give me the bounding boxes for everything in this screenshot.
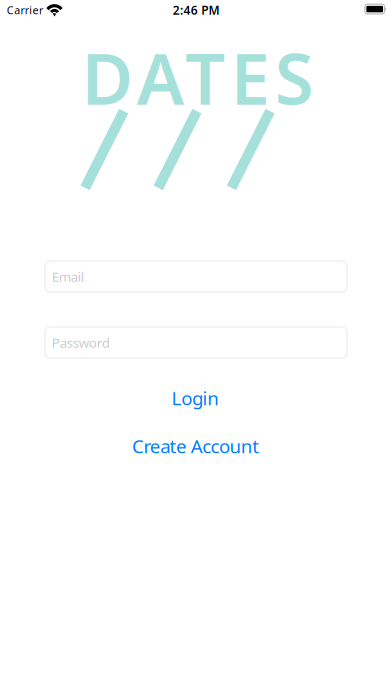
staticText: Password bbox=[52, 334, 110, 351]
button[interactable]: Email bbox=[45, 261, 347, 292]
staticText: 2:46 PM bbox=[173, 2, 220, 18]
button[interactable]: Login bbox=[171, 385, 219, 410]
staticText: Create Account bbox=[132, 433, 259, 458]
staticText: DATES bbox=[81, 30, 314, 124]
staticText: Email bbox=[52, 268, 84, 285]
button[interactable]: Create Account bbox=[132, 433, 259, 458]
button[interactable]: Password bbox=[45, 327, 347, 358]
staticText: Login bbox=[171, 385, 219, 410]
staticText: Carrier bbox=[7, 3, 43, 17]
